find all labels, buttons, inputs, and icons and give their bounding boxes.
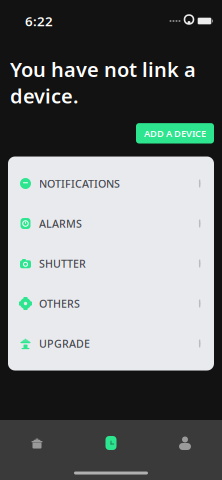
staticText: You have not link a device.	[10, 56, 196, 109]
staticText: 6:22	[25, 12, 53, 30]
staticText: ALARMS	[39, 216, 82, 231]
button[interactable]: Home	[0, 420, 74, 466]
button[interactable]: SHUTTER	[8, 243, 214, 283]
staticText: UPGRADE	[39, 336, 90, 351]
staticText: NOTIFICATIONS	[39, 176, 120, 191]
button[interactable]: Devices	[74, 420, 148, 466]
button[interactable]: NOTIFICATIONS	[8, 163, 214, 203]
button[interactable]: Profile	[148, 420, 222, 466]
staticText: SHUTTER	[39, 256, 86, 271]
staticText: OTHERS	[39, 296, 80, 311]
button[interactable]: ALARMS	[8, 203, 214, 243]
button[interactable]: OTHERS	[8, 283, 214, 323]
button[interactable]: ADD A DEVICE	[136, 123, 214, 143]
button[interactable]: UPGRADE	[8, 323, 214, 363]
staticText: ADD A DEVICE	[144, 127, 206, 139]
